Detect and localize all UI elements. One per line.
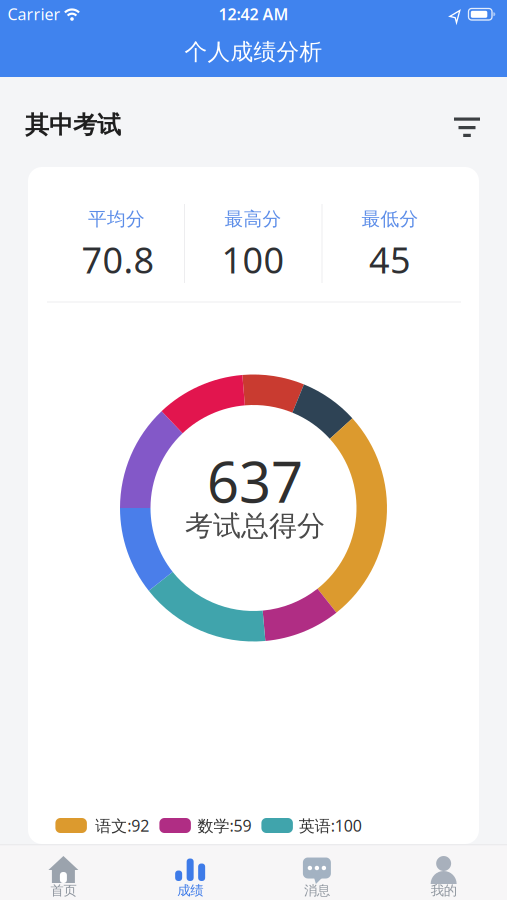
staticText: 12:42 AM [218, 3, 288, 25]
staticText: 最高分 [224, 207, 281, 230]
staticText: 637 [207, 444, 303, 518]
staticText: 英语:100 [299, 815, 362, 836]
staticText: 消息 [304, 882, 330, 899]
staticText: 考试总得分 [185, 509, 325, 543]
button[interactable] [445, 105, 489, 149]
staticText: 最低分 [361, 207, 418, 230]
staticText: 首页 [50, 882, 76, 899]
button[interactable]: 首页 [0, 850, 127, 900]
staticText: Carrier [7, 3, 60, 25]
staticText: 我的 [431, 882, 457, 899]
staticText: 45 [369, 236, 411, 283]
staticText: 70.8 [81, 236, 154, 283]
staticText: 成绩 [177, 882, 203, 899]
staticText: 平均分 [88, 207, 145, 230]
staticText: 语文:92 [95, 815, 149, 836]
button[interactable]: 消息 [253, 850, 380, 900]
button[interactable]: 成绩 [127, 850, 254, 900]
staticText: 数学:59 [197, 815, 251, 836]
staticText: 个人成绩分析 [184, 38, 322, 66]
button[interactable]: 我的 [380, 850, 507, 900]
staticText: 100 [221, 236, 284, 283]
staticText: 其中考试 [25, 110, 121, 140]
